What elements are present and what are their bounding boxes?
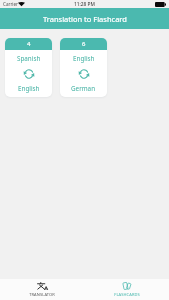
staticText: TRANSLATOR [29,292,55,297]
other: Translator [37,282,48,290]
staticText: English [73,54,95,63]
other: Flashcards [122,282,131,290]
staticText: 6 [82,40,86,48]
button[interactable]: Translator [0,279,84,300]
staticText: 4 [27,40,31,48]
staticText: Carrier [3,1,18,7]
staticText: 11:28 PM [74,1,95,8]
staticText: Translation to Flashcard [43,14,127,24]
staticText: FLASHCARDS [114,292,140,297]
button[interactable]: 4 [5,38,52,97]
button[interactable]: Flashcards [84,279,169,300]
staticText: English [18,84,40,93]
button[interactable]: 6 [60,38,107,97]
staticText: German [71,84,96,93]
staticText: Spanish [17,54,41,63]
